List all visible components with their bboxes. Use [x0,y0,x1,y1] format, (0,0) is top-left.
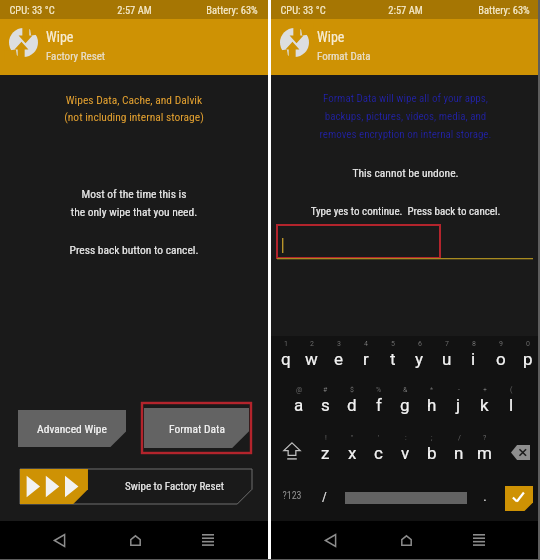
button[interactable]: Home [393,527,419,553]
button[interactable]: % [365,386,392,420]
button[interactable]: / [445,434,472,468]
button[interactable]: 6 [406,340,433,374]
staticText: - [458,386,460,394]
button[interactable]: Back [46,527,72,553]
staticText: j [456,395,461,415]
button[interactable]: 9 [487,340,514,374]
staticText: Format Data will wipe all of your apps, [271,92,540,105]
staticText: removes encryption on internal storage. [271,128,540,141]
staticText: 2:57 AM [388,4,423,16]
button[interactable]: Format Data [142,403,251,453]
button[interactable]: # [312,386,339,420]
button[interactable]: : [392,434,419,468]
button[interactable]: * [418,386,445,420]
staticText: . [483,489,487,504]
button[interactable]: ! [312,434,339,468]
staticText: 9 [499,340,503,348]
button[interactable]: Menu [195,527,221,553]
staticText: z [321,443,330,463]
staticText: backups, pictures, videos, media, and [271,110,540,123]
staticText: v [401,443,410,463]
staticText: 4 [364,340,368,348]
staticText: Advanced Wipe [37,422,107,435]
staticText: & [403,386,408,394]
staticText: % [376,386,382,394]
button[interactable]: Shift [280,439,304,463]
button[interactable]: . [471,482,499,510]
button[interactable]: Format Data [144,408,249,448]
button[interactable]: 4 [352,340,379,374]
button[interactable]: Swipe to Factory Reset [20,469,252,504]
staticText: @ [296,386,303,394]
staticText: Wipe [317,29,345,45]
staticText: (not including internal storage) [0,110,268,123]
staticText: : [405,434,407,442]
button[interactable]: ? [471,434,498,468]
button[interactable]: - [445,386,472,420]
staticText: 3 [337,340,341,348]
staticText: CPU: 33 °C [280,4,326,16]
button[interactable]: Menu [466,527,492,553]
staticText: g [400,395,410,415]
staticText: ! [325,434,327,442]
staticText: ' [378,434,380,442]
button[interactable]: Text field [277,225,440,258]
staticText: + [483,386,487,394]
button[interactable]: 7 [433,340,460,374]
button[interactable]: Enter [505,486,533,511]
button[interactable]: + [471,386,498,420]
staticText: 2 [310,340,314,348]
staticText: / [458,434,461,442]
button[interactable]: 8 [460,340,487,374]
button[interactable]: Home [122,527,148,553]
button[interactable]: @ [285,386,312,420]
staticText: a [294,395,304,415]
staticText: CPU: 33 °C [9,4,55,16]
staticText: # [323,386,328,394]
staticText: Most of the time this is [0,187,268,200]
button[interactable]: Advanced Wipe [18,410,126,447]
staticText: Format Data [317,50,371,63]
staticText: x [348,443,357,463]
staticText: l [509,395,514,415]
staticText: n [454,443,464,463]
staticText: ; [431,434,433,442]
staticText: ?123 [282,490,302,502]
staticText: ? [483,434,487,442]
staticText: 5 [391,340,395,348]
staticText: k [480,395,489,415]
button[interactable]: 2 [298,340,325,374]
staticText: This cannot be undone. [271,166,540,179]
staticText: t [390,349,396,369]
button[interactable]: Back [317,527,343,553]
staticText: " [351,434,354,442]
button[interactable]: ; [418,434,445,468]
button[interactable]: & [391,386,418,420]
staticText: Press back button to cancel. [0,243,268,256]
staticText: 6 [418,340,422,348]
button[interactable]: 5 [379,340,406,374]
button[interactable]: / [310,482,338,510]
staticText: q [281,349,291,369]
staticText: Battery: 63% [478,4,530,16]
button[interactable]: " [339,434,366,468]
staticText: 7 [445,340,449,348]
button[interactable]: ' [365,434,392,468]
staticText: * [430,386,434,394]
staticText: f [376,395,382,415]
staticText: Wipes Data, Cache, and Dalvik [0,93,268,106]
button[interactable]: 3 [325,340,352,374]
button[interactable]: 1 [272,340,299,374]
button[interactable]: 0 [514,340,540,374]
staticText: 2:57 AM [117,4,152,16]
button[interactable]: ( [498,386,525,420]
staticText: 1 [284,340,288,348]
staticText: u [442,349,452,369]
staticText: s [321,395,330,415]
staticText: Swipe to Factory Reset [125,480,224,493]
button[interactable]: ?123 [274,482,310,510]
staticText: r [363,349,369,369]
button[interactable]: Backspace [511,445,530,460]
button[interactable]: $ [338,386,365,420]
